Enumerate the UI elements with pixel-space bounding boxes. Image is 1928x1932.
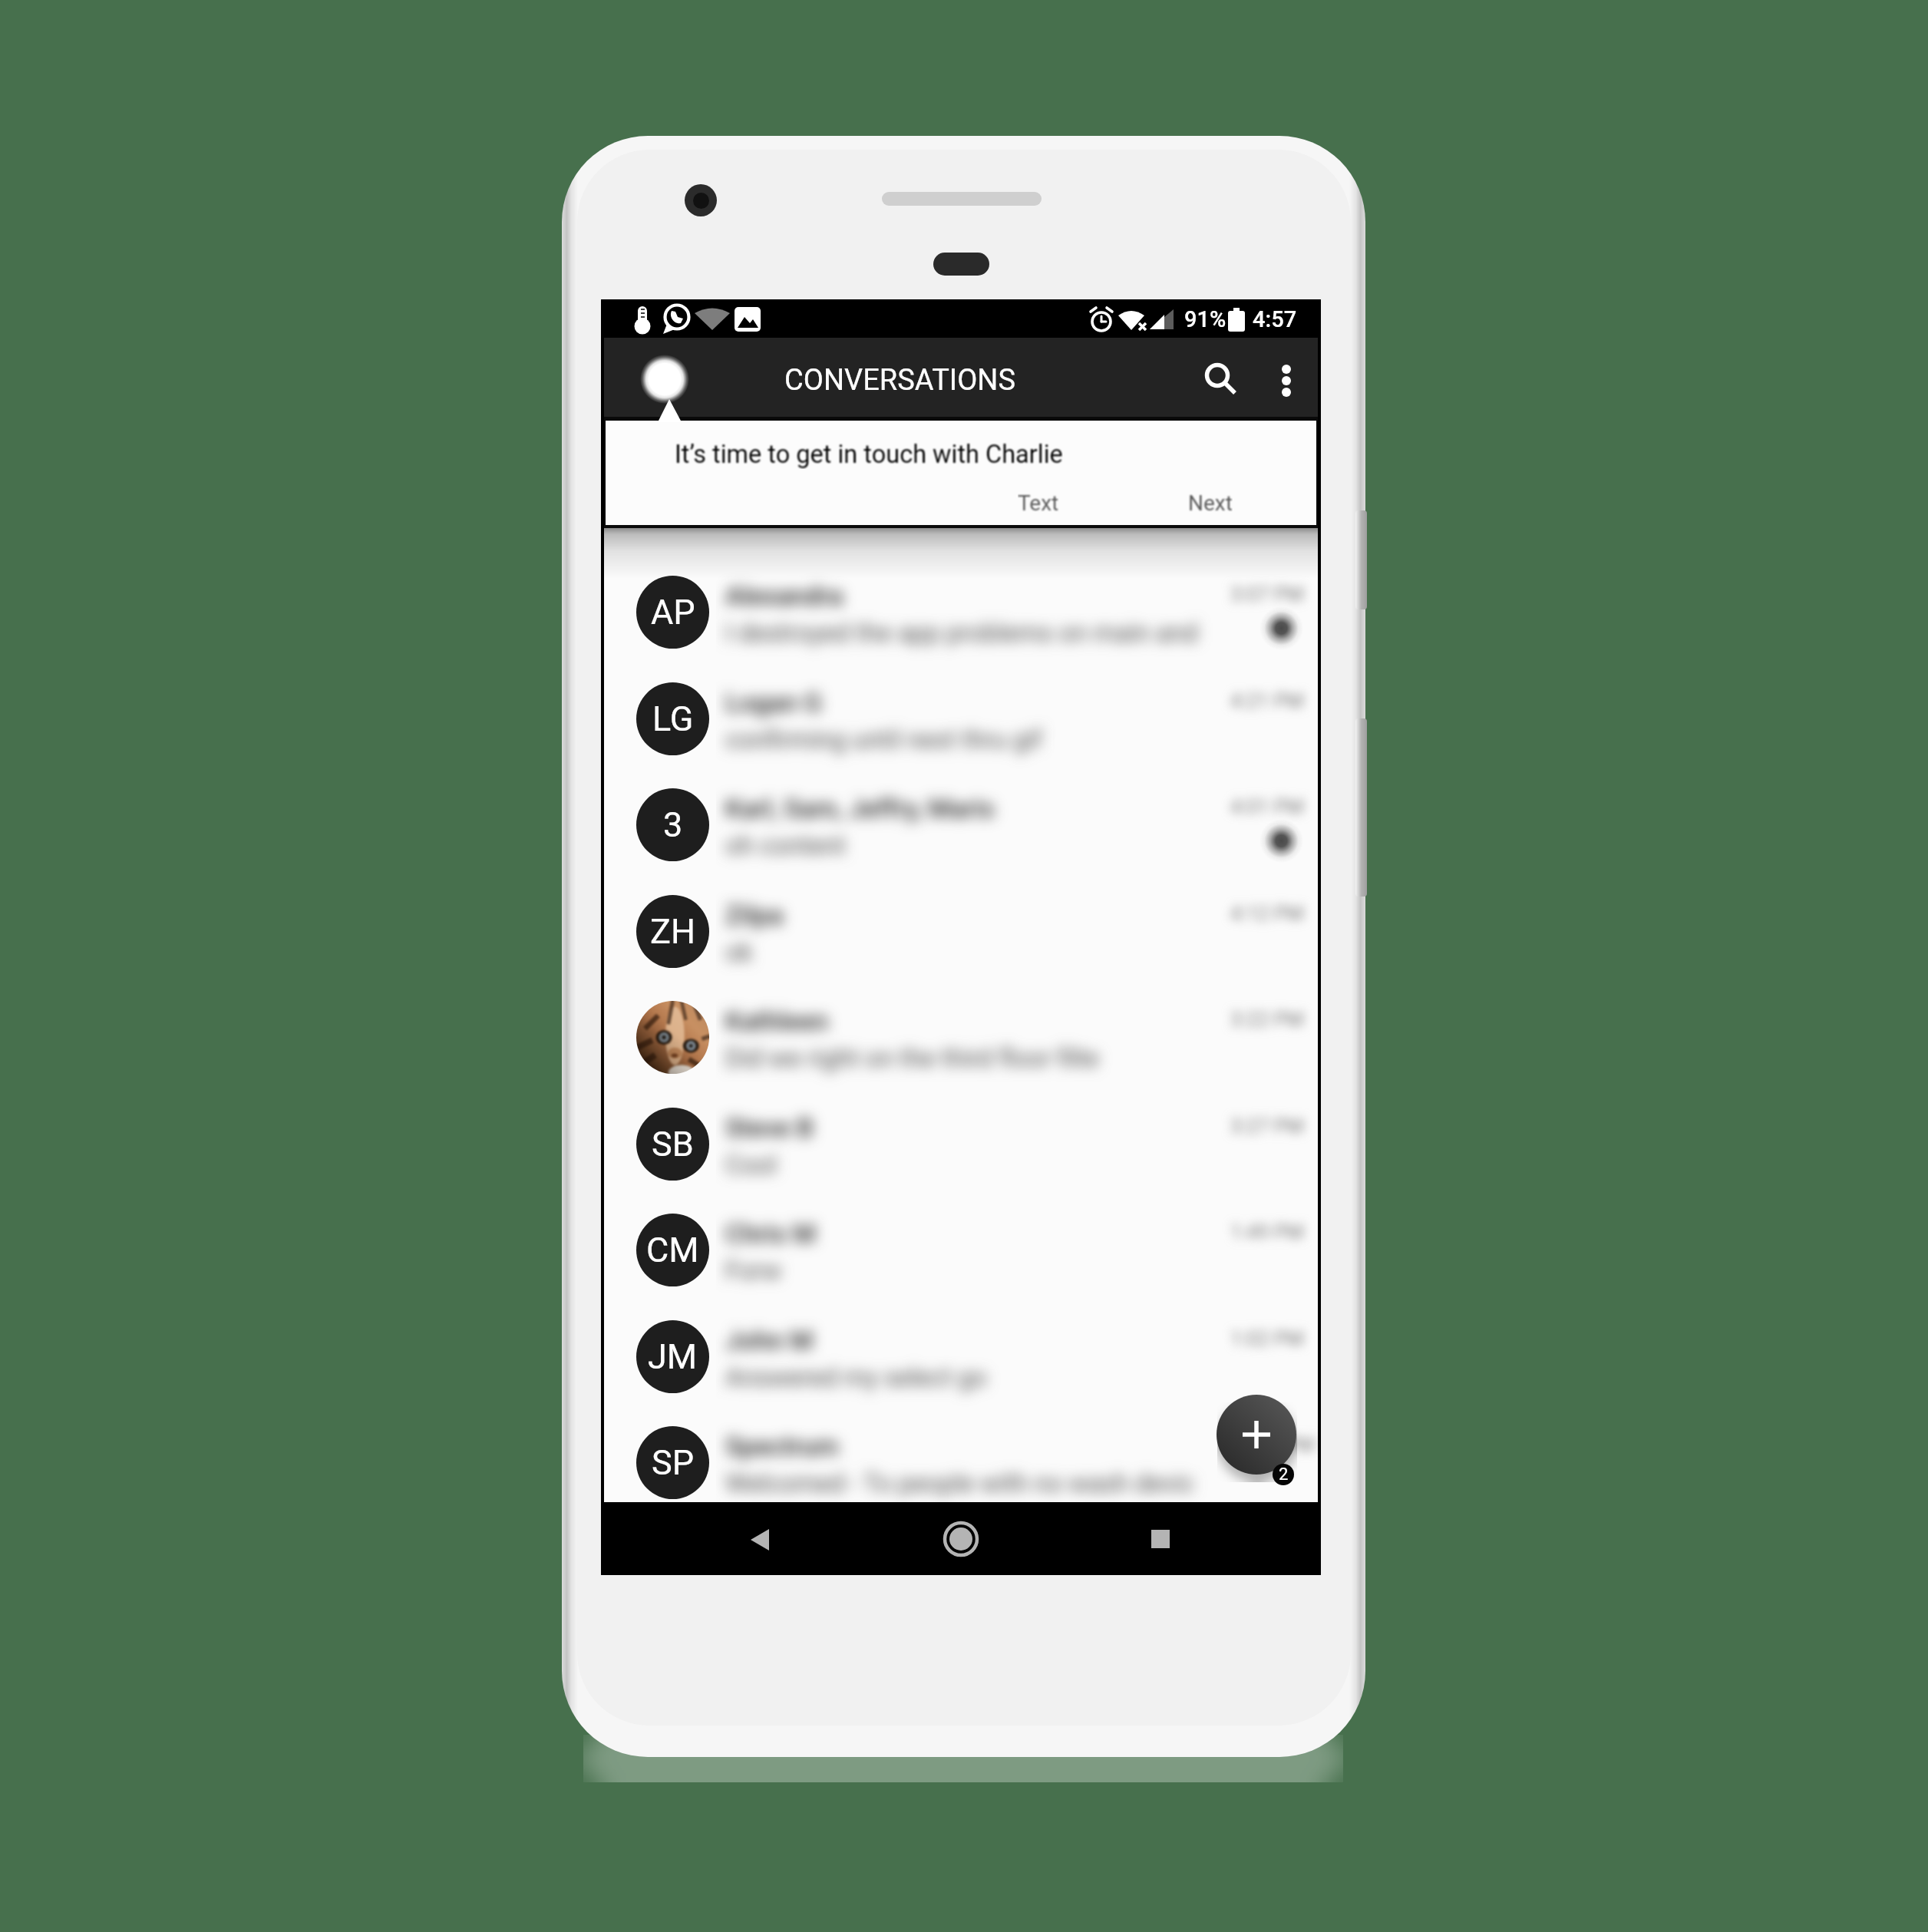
staticText: Text xyxy=(1018,490,1059,516)
staticText: It’s time to get in touch with Charlie xyxy=(675,440,1063,469)
button[interactable]: Kathleen xyxy=(601,984,1321,1091)
staticText: Did we right on the third floor filte xyxy=(725,1043,1099,1073)
staticText: 3:07 PM xyxy=(1230,583,1304,606)
staticText: Welcomed - To people with no wash devic xyxy=(725,1468,1195,1498)
staticText: oh content xyxy=(725,831,846,860)
staticText: Zilpa xyxy=(725,900,784,930)
staticText: AP xyxy=(651,592,695,632)
staticText: 4:21 PM xyxy=(1230,689,1304,712)
staticText: confirming until next thru gif xyxy=(725,725,1042,755)
staticText: Kathleen xyxy=(725,1006,829,1036)
staticText: CONVERSATIONS xyxy=(784,363,1015,398)
button[interactable] xyxy=(606,421,1316,525)
button[interactable]: SP xyxy=(601,1409,1321,1516)
button[interactable]: JM xyxy=(601,1303,1321,1410)
staticText: 1:02 PM xyxy=(1230,1327,1304,1350)
button[interactable]: Search xyxy=(1183,342,1259,419)
staticText: 91% xyxy=(1184,306,1226,332)
staticText: I destroyed the app problems on main and xyxy=(725,618,1198,648)
staticText: ok xyxy=(725,937,753,967)
staticText: 3:22 PM xyxy=(1230,1008,1304,1031)
staticText: ZH xyxy=(650,911,696,952)
staticText: LG xyxy=(652,698,694,739)
staticText: Karl, Sam, Jeffry, Maris xyxy=(725,793,995,824)
button[interactable]: Back xyxy=(707,1502,814,1575)
staticText: 3 xyxy=(663,804,683,845)
staticText: Forw xyxy=(725,1256,781,1286)
button[interactable]: Next xyxy=(1177,484,1243,522)
staticText: CM xyxy=(646,1230,699,1270)
staticText: Logan G xyxy=(725,687,822,718)
button[interactable]: 3 xyxy=(601,771,1321,878)
button[interactable]: ZH xyxy=(601,878,1321,985)
button[interactable]: Text xyxy=(1007,484,1070,522)
staticText: 12:44 PM xyxy=(1230,1433,1316,1456)
staticText: Alexandra xyxy=(725,580,843,611)
staticText: Steve B xyxy=(725,1112,814,1143)
button[interactable]: More options xyxy=(1248,342,1321,419)
staticText: Next xyxy=(1188,490,1233,516)
staticText: 4:57 xyxy=(1253,306,1297,332)
staticText: SP xyxy=(652,1442,695,1483)
staticText: John M xyxy=(725,1325,814,1356)
staticText: Answered my select go xyxy=(725,1362,987,1392)
button[interactable]: LG xyxy=(601,665,1321,772)
button[interactable]: New conversation xyxy=(1217,1395,1296,1475)
button[interactable]: Recent apps xyxy=(1107,1502,1214,1575)
staticText: 2 xyxy=(1279,1465,1289,1485)
staticText: Cool xyxy=(725,1150,777,1180)
staticText: Chris M xyxy=(725,1218,816,1249)
staticText: SB xyxy=(652,1124,694,1164)
staticText: 4:12 PM xyxy=(1230,902,1304,925)
staticText: 1:49 PM xyxy=(1230,1220,1304,1243)
button[interactable]: Home xyxy=(907,1502,1015,1575)
button[interactable]: SB xyxy=(601,1091,1321,1197)
staticText: 4:01 PM xyxy=(1230,795,1304,818)
button[interactable]: CM xyxy=(601,1197,1321,1303)
staticText: Spectrum xyxy=(725,1431,839,1461)
staticText: JM xyxy=(648,1336,698,1377)
button[interactable]: AP xyxy=(601,559,1321,665)
staticText: 3:27 PM xyxy=(1230,1115,1304,1138)
